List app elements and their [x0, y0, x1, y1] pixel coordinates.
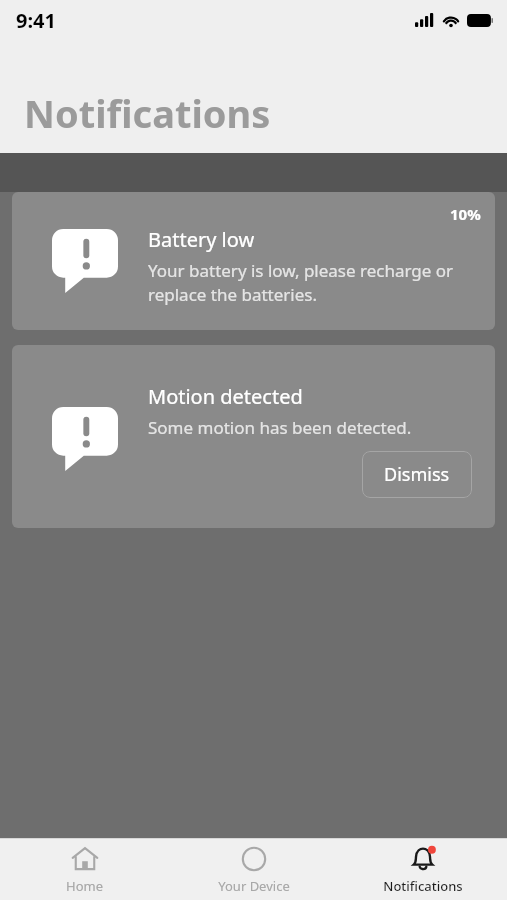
- staticText: Home: [66, 877, 103, 895]
- staticText: Some motion has been detected.: [148, 416, 412, 439]
- button[interactable]: Motion detected: [12, 345, 495, 528]
- staticText: Dismiss: [384, 462, 450, 487]
- button[interactable]: Dismiss: [362, 451, 472, 498]
- staticText: Battery low: [148, 226, 255, 253]
- staticText: Notifications: [24, 87, 271, 139]
- button[interactable]: Home: [0, 839, 169, 900]
- button[interactable]: Your Device: [169, 839, 338, 900]
- button[interactable]: 10%: [12, 192, 495, 330]
- staticText: Motion detected: [148, 383, 303, 410]
- staticText: 10%: [450, 204, 481, 224]
- staticText: Notifications: [383, 877, 463, 895]
- staticText: Your battery is low, please recharge or …: [148, 259, 479, 306]
- staticText: 9:41: [16, 7, 56, 34]
- button[interactable]: Notifications: [338, 839, 507, 900]
- staticText: Your Device: [218, 877, 290, 895]
